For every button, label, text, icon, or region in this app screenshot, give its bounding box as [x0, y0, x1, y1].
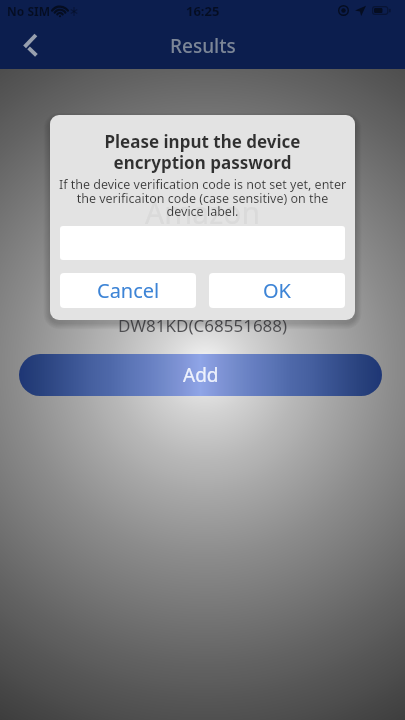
staticText: Please input the device encryption passw…: [50, 130, 355, 174]
button[interactable]: Back: [10, 28, 42, 60]
staticText: DW81KD(C68551688): [118, 314, 288, 337]
staticText: Amazon: [50, 192, 355, 233]
button[interactable]: Add: [19, 354, 382, 396]
staticText: Add: [183, 362, 219, 388]
staticText: No SIM: [7, 3, 50, 19]
staticText: OK: [263, 277, 291, 304]
staticText: 16:25: [186, 2, 220, 20]
button[interactable]: Cancel: [60, 273, 196, 308]
staticText: Results: [170, 33, 236, 59]
button[interactable]: OK: [209, 273, 345, 308]
staticText: If the device verification code is not s…: [50, 176, 355, 219]
staticText: Cancel: [97, 277, 160, 304]
